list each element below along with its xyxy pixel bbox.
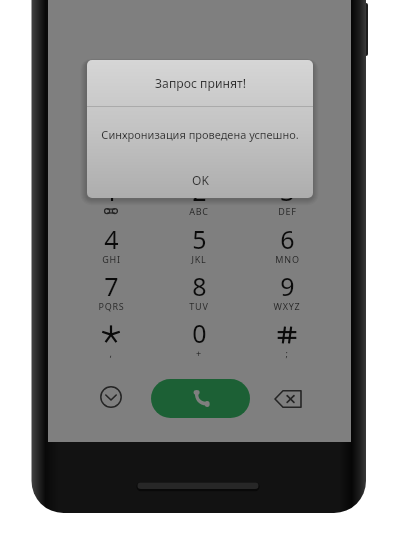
staticText: 6: [280, 222, 295, 254]
staticText: JKL: [191, 253, 207, 265]
button[interactable]: 1: [75, 170, 147, 218]
staticText: GHI: [102, 253, 121, 265]
button[interactable]: 7: [75, 265, 147, 313]
staticText: Синхронизация проведена успешно.: [101, 127, 299, 142]
staticText: 0: [192, 316, 207, 348]
staticText: OK: [192, 172, 209, 188]
staticText: ,: [109, 347, 113, 359]
button[interactable]: 5: [163, 218, 235, 266]
staticText: PQRS: [98, 300, 125, 312]
staticText: 1: [104, 174, 119, 206]
button[interactable]: 6: [251, 218, 323, 266]
staticText: ;: [285, 347, 289, 359]
staticText: 9: [280, 269, 295, 301]
staticText: 7: [104, 269, 119, 301]
staticText: ABC: [189, 205, 209, 217]
button[interactable]: OK: [87, 161, 313, 198]
button[interactable]: Backspace: [270, 385, 306, 413]
button[interactable]: 9: [251, 265, 323, 313]
staticText: 4: [104, 222, 119, 254]
button[interactable]: 2: [163, 170, 235, 218]
staticText: +: [196, 347, 202, 359]
button[interactable]: ,: [75, 312, 147, 360]
staticText: 3: [280, 174, 295, 206]
staticText: TUV: [189, 300, 209, 312]
staticText: 8: [192, 269, 207, 301]
staticText: MNO: [275, 253, 300, 265]
button[interactable]: Call: [151, 379, 250, 418]
staticText: 2: [192, 174, 207, 206]
staticText: WXYZ: [273, 300, 301, 312]
staticText: 5: [192, 222, 207, 254]
staticText: Запрос принят!: [155, 75, 246, 92]
button[interactable]: 8: [163, 265, 235, 313]
button[interactable]: Hide keypad: [94, 380, 128, 414]
button[interactable]: 3: [251, 170, 323, 218]
button[interactable]: 4: [75, 218, 147, 266]
button[interactable]: 0: [163, 312, 235, 360]
button[interactable]: ;: [251, 312, 323, 360]
staticText: DEF: [278, 205, 297, 217]
